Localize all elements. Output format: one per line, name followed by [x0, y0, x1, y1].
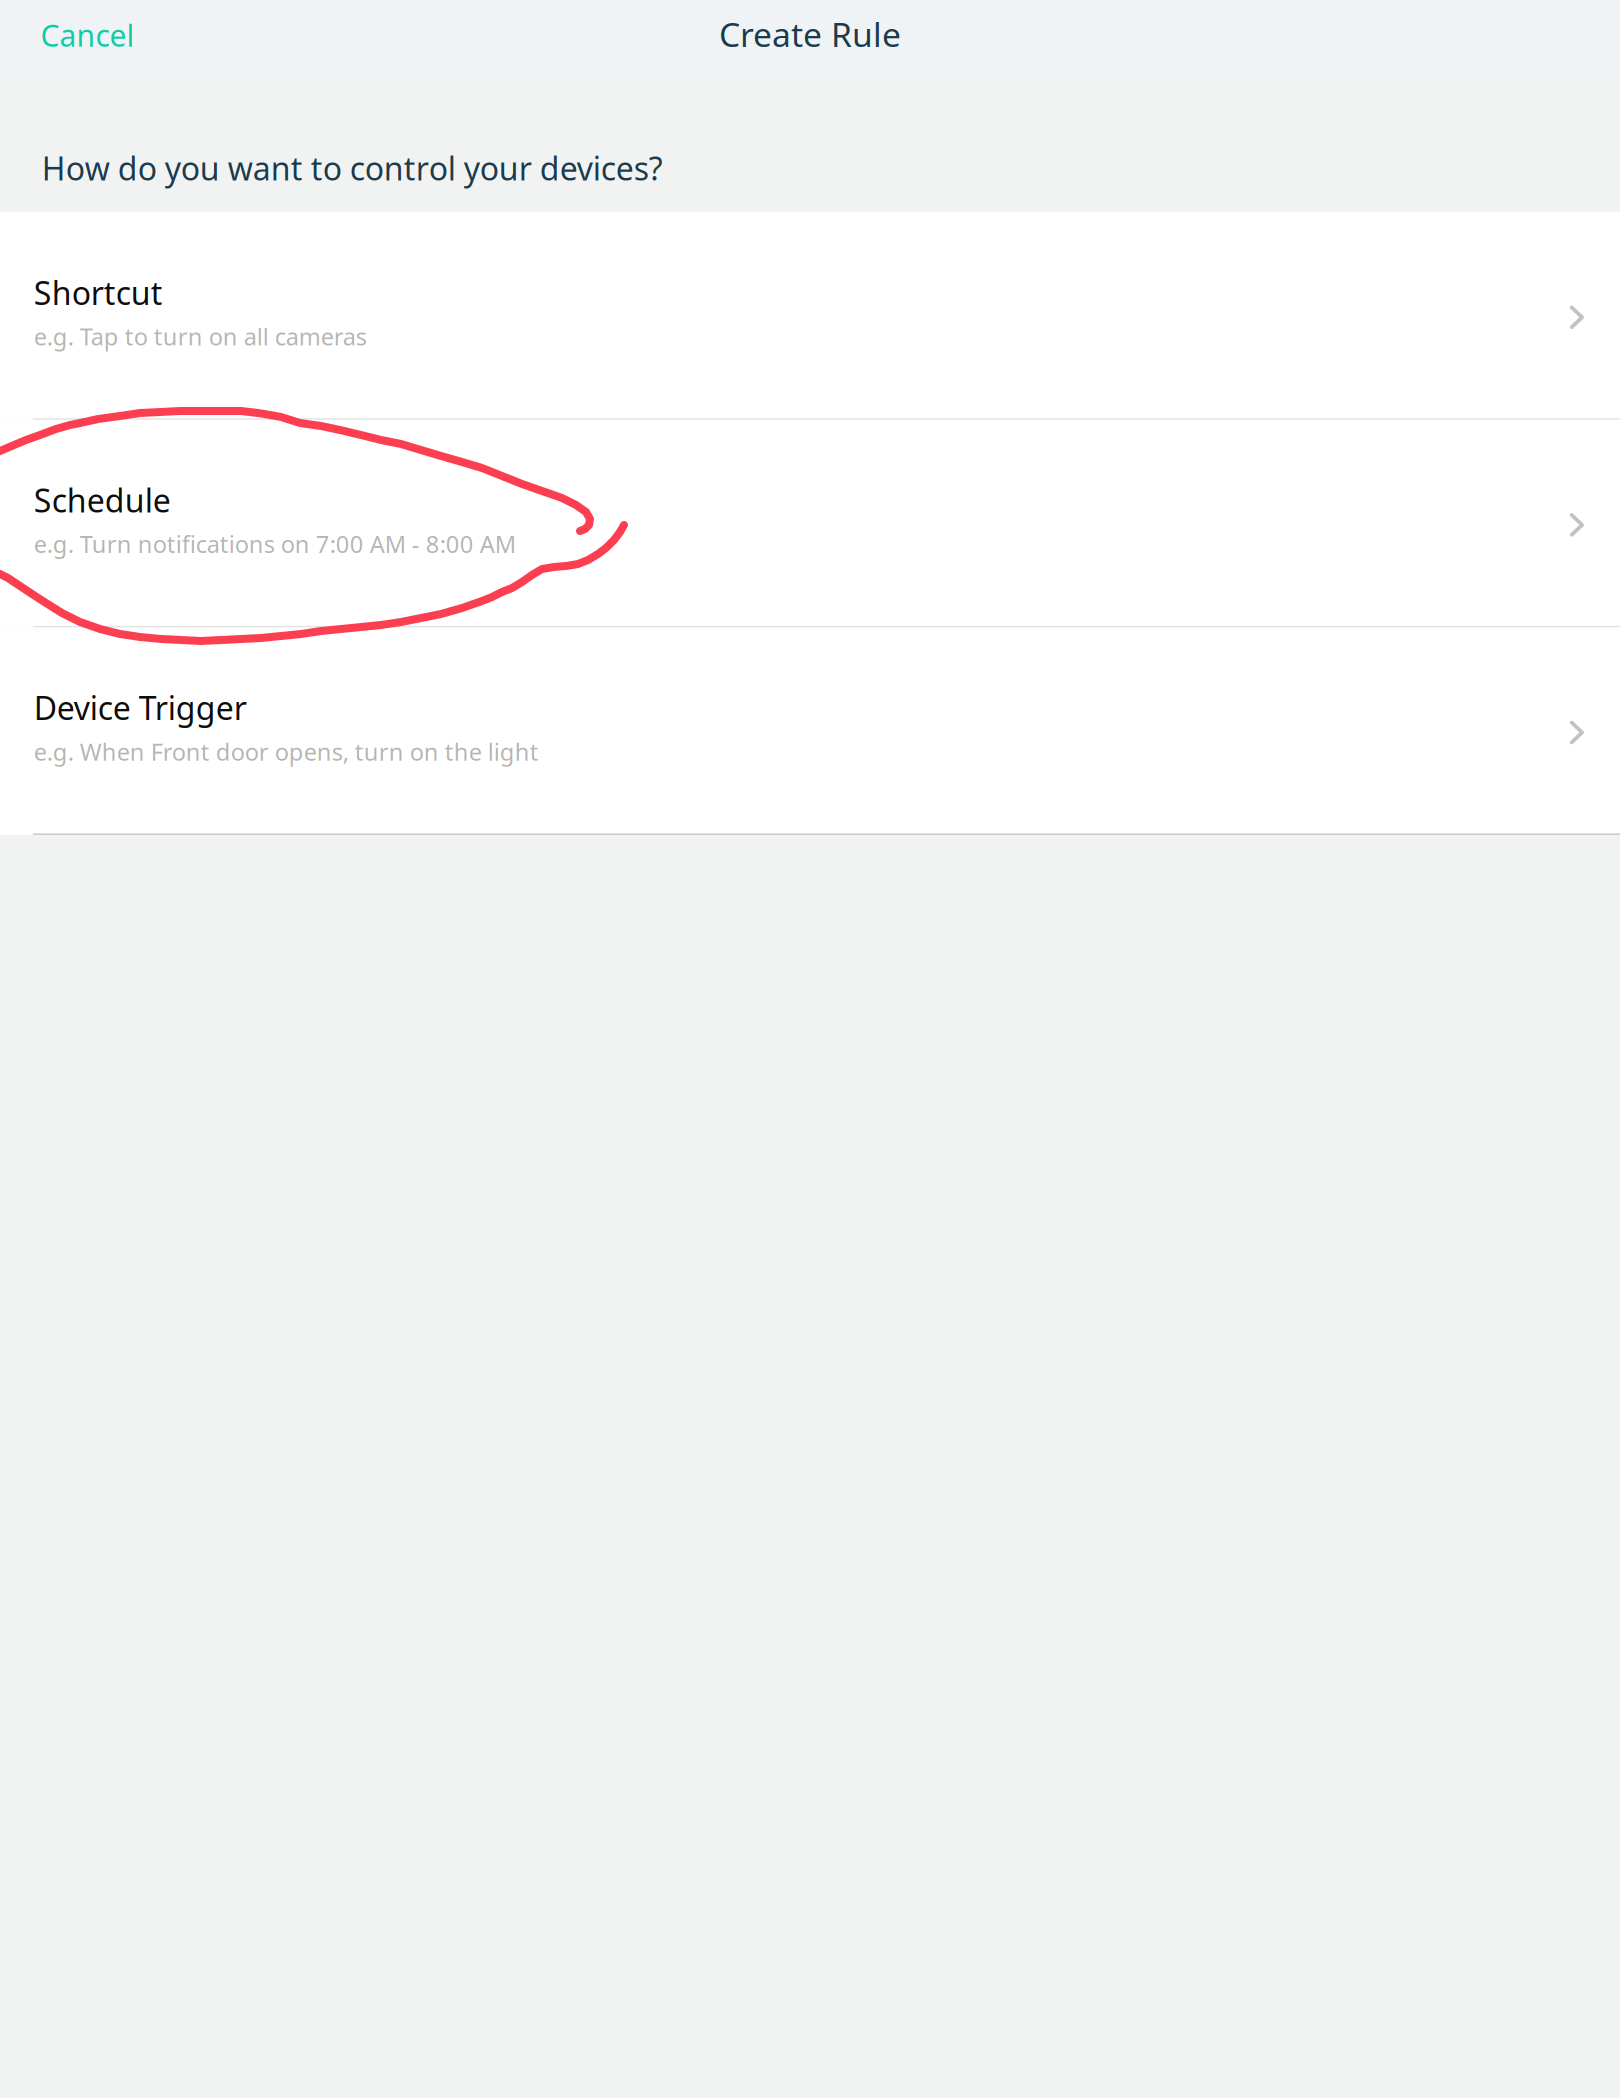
button[interactable]: Schedule [0, 420, 1620, 626]
staticText: e.g. Tap to turn on all cameras [34, 320, 367, 352]
staticText: e.g. Turn notifications on 7:00 AM - 8:0… [34, 528, 516, 560]
staticText: How do you want to control your devices? [42, 146, 663, 190]
staticText: Cancel [40, 15, 134, 55]
staticText: Schedule [34, 478, 171, 522]
staticText: Shortcut [34, 271, 163, 314]
button[interactable]: Shortcut [0, 212, 1620, 418]
staticText: e.g. When Front door opens, turn on the … [34, 735, 539, 768]
staticText: Create Rule [719, 11, 901, 57]
staticText: Device Trigger [34, 686, 247, 729]
button[interactable]: Device Trigger [0, 627, 1620, 833]
button[interactable]: Cancel [0, 0, 164, 86]
